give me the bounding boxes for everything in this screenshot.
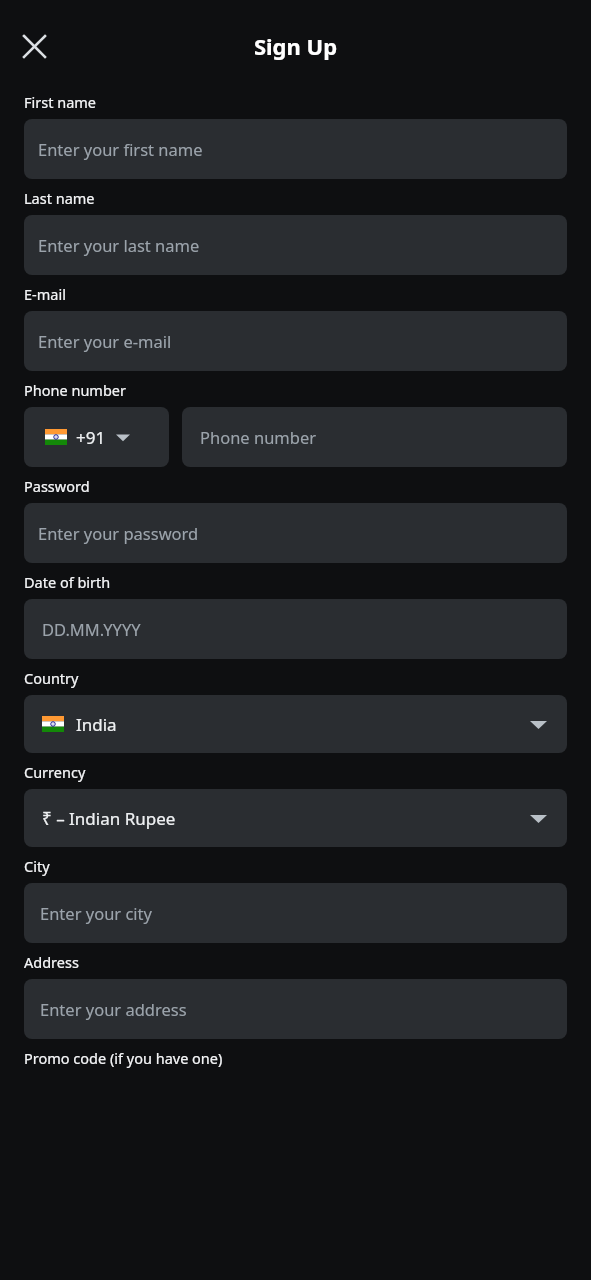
staticText: Sign Up [0,31,591,61]
staticText: Enter your last name [38,234,200,256]
staticText: Enter your e-mail [38,330,172,352]
staticText: Currency [24,762,86,782]
staticText: First name [24,92,97,112]
staticText: DD.MM.YYYY [42,618,141,640]
button[interactable]: Enter your password [24,503,567,563]
staticText: Date of birth [24,572,111,592]
staticText: Phone number [24,380,126,400]
button[interactable]: India [24,695,567,753]
staticText: Password [24,476,90,496]
staticText: Address [24,952,79,972]
staticText: ₹ – Indian Rupee [42,807,530,830]
staticText: Enter your first name [38,138,203,160]
button[interactable]: +91 [24,407,169,467]
staticText: Phone number [200,426,317,448]
staticText: Country [24,668,79,688]
button[interactable]: Close [12,24,56,68]
staticText: Last name [24,188,95,208]
staticText: City [24,856,50,876]
staticText: Enter your address [40,998,187,1020]
button[interactable]: DD.MM.YYYY [24,599,567,659]
staticText: E-mail [24,284,66,304]
staticText: Enter your city [40,902,152,924]
button[interactable]: Enter your address [24,979,567,1039]
button[interactable]: Enter your last name [24,215,567,275]
staticText: +91 [76,426,106,449]
button[interactable]: ₹ – Indian Rupee [24,789,567,847]
staticText: India [76,713,530,736]
button[interactable]: Enter your city [24,883,567,943]
staticText: Promo code (if you have one) [24,1048,223,1068]
button[interactable]: Enter your first name [24,119,567,179]
button[interactable]: Enter your e-mail [24,311,567,371]
button[interactable]: Phone number [182,407,567,467]
staticText: Enter your password [38,522,199,544]
